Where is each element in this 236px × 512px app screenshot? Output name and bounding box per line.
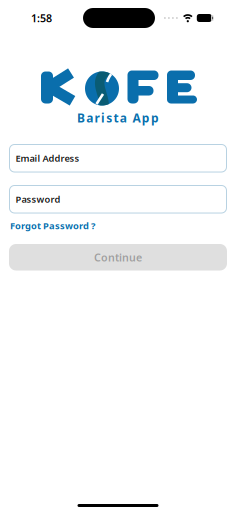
- staticText: Barista App: [77, 110, 159, 126]
- staticText: 1:58: [31, 11, 52, 25]
- button[interactable]: Forgot Password ?: [10, 219, 95, 232]
- button[interactable]: Password: [9, 185, 227, 213]
- staticText: Continue: [94, 250, 142, 264]
- staticText: Email Address: [15, 152, 79, 164]
- staticText: Password: [15, 193, 60, 205]
- staticText: Forgot Password ?: [10, 219, 95, 232]
- button[interactable]: Email Address: [9, 144, 227, 172]
- button[interactable]: Continue: [9, 244, 227, 270]
